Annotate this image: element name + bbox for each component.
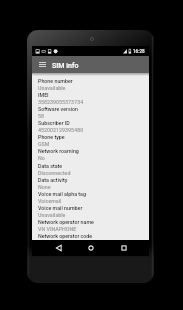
staticText: Data state	[38, 163, 63, 169]
button[interactable]: IMEI	[32, 92, 149, 106]
button[interactable]: Recents	[115, 240, 133, 256]
button[interactable]: Open navigation drawer	[38, 60, 47, 69]
staticText: Unavailable	[38, 85, 66, 91]
staticText: VN VINAPHONE	[38, 226, 77, 232]
staticText: Data activity	[38, 177, 68, 183]
button[interactable]: Network operator name	[32, 219, 149, 233]
staticText: Voice mail alpha tag	[38, 191, 86, 197]
button[interactable]: Subscriber ID	[32, 120, 149, 134]
staticText: 452002129395480	[38, 127, 84, 133]
button[interactable]: Back	[50, 240, 68, 256]
staticText: 58	[38, 113, 45, 119]
staticText: 16:28	[133, 49, 145, 54]
staticText: SIM info	[52, 61, 79, 69]
staticText: 358239055373734	[38, 99, 84, 105]
button[interactable]: Network operator code	[32, 233, 149, 240]
staticText: Unavailable	[38, 212, 66, 218]
button[interactable]: Phone number	[32, 78, 149, 92]
staticText: Network operator name	[38, 219, 94, 225]
staticText: Software version	[38, 106, 78, 112]
staticText: Voice mail number	[38, 205, 83, 211]
staticText: Voicemail	[38, 198, 62, 204]
staticText: Phone number	[38, 78, 73, 84]
staticText: Phone type	[38, 134, 65, 140]
staticText: Network operator code	[38, 233, 93, 239]
button[interactable]: Phone type	[32, 134, 149, 148]
staticText: Disconnected	[38, 170, 71, 176]
staticText: GSM	[38, 141, 50, 147]
staticText: None	[38, 184, 51, 190]
button[interactable]: Data activity	[32, 177, 149, 191]
staticText: Network roaming	[38, 148, 79, 154]
button[interactable]: Network roaming	[32, 148, 149, 163]
staticText: Subscriber ID	[38, 120, 70, 126]
button[interactable]: Software version	[32, 106, 149, 120]
button[interactable]: Data state	[32, 163, 149, 177]
staticText: No	[38, 155, 45, 161]
staticText: IMEI	[38, 92, 49, 98]
button[interactable]: Voice mail number	[32, 205, 149, 219]
button[interactable]: Voice mail alpha tag	[32, 191, 149, 205]
button[interactable]: Home	[82, 240, 100, 256]
